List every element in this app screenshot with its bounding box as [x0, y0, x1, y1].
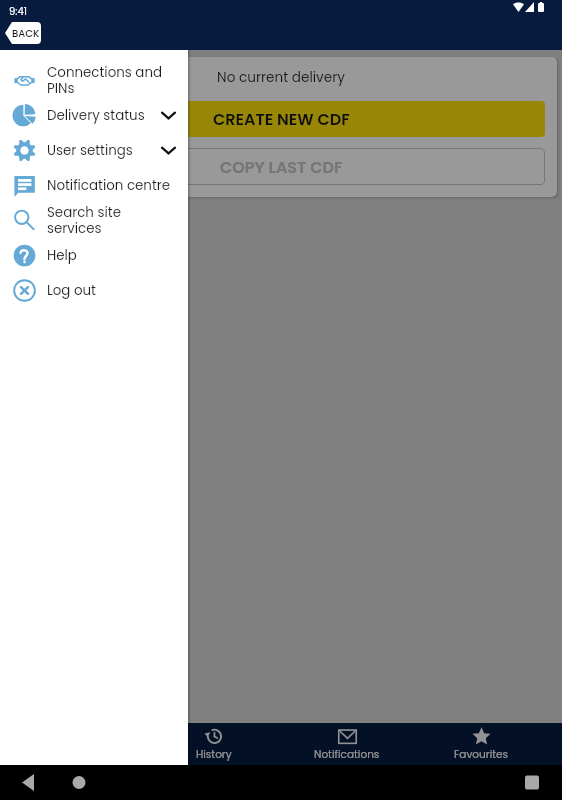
button[interactable]: User settings	[0, 133, 188, 168]
staticText: Notification centre	[47, 176, 175, 195]
staticText: No current delivery	[217, 68, 345, 87]
staticText: Connections and PINs	[47, 63, 175, 98]
button[interactable]: Notification centre	[0, 168, 188, 203]
staticText: Search site services	[47, 203, 175, 238]
button[interactable]: Connections and PINs	[0, 63, 188, 98]
staticText: Favourites	[454, 747, 509, 762]
staticText: CREATE NEW CDF	[213, 108, 350, 130]
staticText: Notifications	[314, 747, 380, 762]
button[interactable]: Log out	[0, 273, 188, 308]
staticText: Log out	[47, 281, 175, 300]
button[interactable]: Search site services	[0, 203, 188, 238]
staticText: History	[196, 747, 232, 762]
button[interactable]: COPY LAST CDF	[17, 148, 545, 185]
button[interactable]: CREATE NEW CDF	[17, 101, 545, 137]
button[interactable]: Favourites	[414, 723, 548, 765]
staticText: BACK	[12, 26, 40, 40]
staticText: User settings	[47, 141, 162, 160]
staticText: COPY LAST CDF	[220, 156, 343, 178]
staticText: Delivery status	[47, 106, 162, 125]
button[interactable]: History	[147, 723, 280, 765]
staticText: 9:41	[9, 4, 27, 18]
button[interactable]: Notifications	[280, 723, 414, 765]
button[interactable]: Help	[0, 238, 188, 273]
staticText: Help	[47, 246, 175, 265]
button[interactable]: Delivery status	[0, 98, 188, 133]
button[interactable]: BACK	[5, 22, 41, 44]
